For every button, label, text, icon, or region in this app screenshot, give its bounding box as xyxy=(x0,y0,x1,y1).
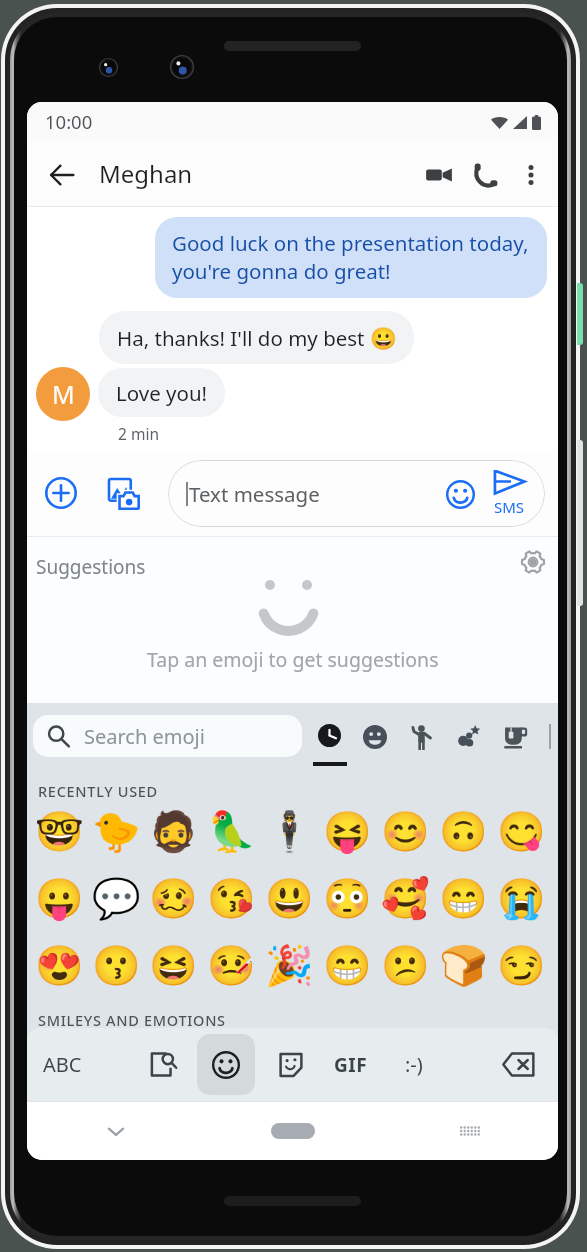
button[interactable]: 🤓 xyxy=(31,802,88,862)
button[interactable]: Video call xyxy=(416,152,462,198)
button[interactable]: Back xyxy=(39,152,85,198)
staticText: 🕴 xyxy=(265,809,314,855)
button[interactable]: 💬 xyxy=(88,869,145,929)
button[interactable]: Text message xyxy=(168,460,545,527)
button[interactable]: Emoticons xyxy=(383,1028,445,1101)
staticText: 😝 xyxy=(323,809,372,855)
button[interactable]: 😋 xyxy=(492,802,550,862)
staticText: 😊 xyxy=(381,809,430,855)
staticText: Love you! xyxy=(116,379,208,407)
button[interactable]: Smileys and emotions xyxy=(352,708,398,766)
staticText: :-) xyxy=(405,1051,423,1078)
staticText: 😛 xyxy=(35,876,84,922)
staticText: Tap an emoji to get suggestions xyxy=(147,646,439,673)
button[interactable]: Animals and nature xyxy=(445,708,491,766)
button[interactable]: 🐤 xyxy=(88,802,145,862)
button[interactable]: Hide keyboard xyxy=(27,1102,204,1160)
button[interactable]: 😃 xyxy=(260,869,318,929)
button[interactable]: 🦜 xyxy=(202,802,260,862)
staticText: SMILEYS AND EMOTIONS xyxy=(38,1010,226,1030)
button[interactable]: 😝 xyxy=(318,802,376,862)
staticText: 😭 xyxy=(497,876,546,922)
button[interactable]: 😗 xyxy=(88,936,145,996)
button[interactable]: Search xyxy=(132,1028,194,1101)
staticText: SMS xyxy=(494,497,525,517)
button[interactable]: GIF xyxy=(320,1028,382,1101)
button[interactable]: Good luck on the presentation today, you… xyxy=(155,217,547,298)
staticText: ABC xyxy=(43,1051,82,1078)
button[interactable]: Backspace xyxy=(483,1028,553,1101)
button[interactable]: Call xyxy=(462,152,508,198)
button[interactable]: Insert emoji xyxy=(440,474,480,514)
button[interactable]: People and body xyxy=(398,708,444,766)
staticText: GIF xyxy=(334,1052,368,1078)
button[interactable]: 🍞 xyxy=(434,936,492,996)
button[interactable]: Add attachment xyxy=(38,470,84,516)
button[interactable]: Switch keyboard xyxy=(381,1102,558,1160)
button[interactable]: 🥴 xyxy=(145,869,202,929)
staticText: 😃 xyxy=(265,876,314,922)
staticText: 😍 xyxy=(35,943,84,989)
button[interactable]: Send photo xyxy=(100,470,146,516)
staticText: 🐤 xyxy=(92,809,141,855)
button[interactable]: 😳 xyxy=(318,869,376,929)
button[interactable]: Home xyxy=(204,1102,381,1160)
button[interactable]: 😊 xyxy=(376,802,434,862)
button[interactable]: Recently used xyxy=(306,708,353,774)
button[interactable]: 😘 xyxy=(202,869,260,929)
staticText: 😁 xyxy=(439,876,488,922)
button[interactable]: 😏 xyxy=(492,936,550,996)
button[interactable]: 🎉 xyxy=(260,936,318,996)
staticText: 😋 xyxy=(497,809,546,855)
staticText: 🍞 xyxy=(439,943,488,989)
staticText: 🤒 xyxy=(207,943,256,989)
button[interactable]: 😁 xyxy=(434,869,492,929)
staticText: RECENTLY USED xyxy=(38,781,158,801)
button[interactable]: 😆 xyxy=(145,936,202,996)
staticText: 😀 xyxy=(370,326,397,351)
button[interactable]: Search emoji xyxy=(33,715,302,757)
staticText: Ha, thanks! I'll do my best xyxy=(117,324,370,352)
button[interactable]: Suggestion settings xyxy=(512,541,554,583)
staticText: 😗 xyxy=(92,943,141,989)
staticText: 🙃 xyxy=(439,809,488,855)
button[interactable]: 😭 xyxy=(492,869,550,929)
staticText: 😳 xyxy=(323,876,372,922)
button[interactable]: 🧔 xyxy=(145,802,202,862)
staticText: 🥰 xyxy=(381,876,430,922)
button[interactable]: 🙃 xyxy=(434,802,492,862)
staticText: 🧔 xyxy=(149,809,198,855)
button[interactable]: 😁 xyxy=(318,936,376,996)
staticText: 🥴 xyxy=(149,876,198,922)
button[interactable]: 😕 xyxy=(376,936,434,996)
staticText: Text message xyxy=(189,480,320,508)
staticText: 10:00 xyxy=(45,109,93,134)
button[interactable]: Love you! xyxy=(98,368,225,417)
staticText: Search emoji xyxy=(84,723,205,750)
button[interactable]: More options xyxy=(508,152,554,198)
button[interactable]: ABC keyboard xyxy=(27,1028,97,1101)
staticText: 😏 xyxy=(497,943,546,989)
button[interactable]: 😍 xyxy=(31,936,88,996)
staticText: Meghan xyxy=(99,157,193,190)
staticText: M xyxy=(52,377,75,411)
button[interactable]: 😛 xyxy=(31,869,88,929)
button[interactable]: Food and drink xyxy=(493,708,539,766)
staticText: 🤓 xyxy=(35,809,84,855)
staticText: 😁 xyxy=(323,943,372,989)
button[interactable]: Stickers xyxy=(260,1028,322,1101)
button[interactable]: Emoji xyxy=(195,1028,257,1101)
button[interactable]: M xyxy=(36,367,90,421)
staticText: 😕 xyxy=(381,943,430,989)
staticText: 😆 xyxy=(149,943,198,989)
button[interactable]: 🥰 xyxy=(376,869,434,929)
button[interactable]: Ha, thanks! I'll do my best xyxy=(99,311,414,364)
button[interactable]: 🤒 xyxy=(202,936,260,996)
button[interactable]: 🕴 xyxy=(260,802,318,862)
staticText: 2 min xyxy=(118,423,159,444)
staticText: Suggestions xyxy=(36,554,146,580)
staticText: 🎉 xyxy=(265,943,314,989)
staticText: 😘 xyxy=(207,876,256,922)
button[interactable]: Send SMS xyxy=(484,470,534,517)
staticText: 🦜 xyxy=(207,809,256,855)
